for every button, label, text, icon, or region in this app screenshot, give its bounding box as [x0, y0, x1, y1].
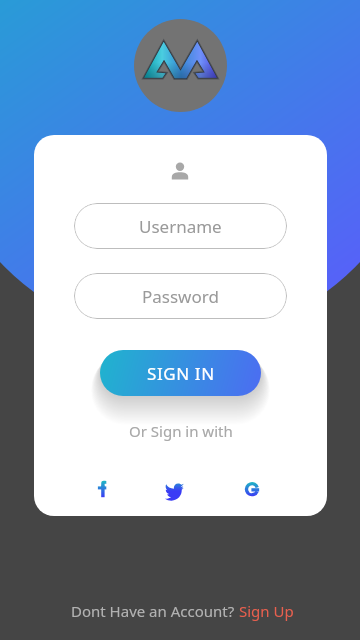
button[interactable]: SIGN IN [100, 350, 261, 396]
staticText: SIGN IN [147, 362, 215, 385]
button[interactable]: Sign in with Twitter [159, 473, 191, 505]
button[interactable]: Sign in with Google [236, 473, 268, 505]
button[interactable]: Username [74, 203, 287, 249]
staticText: Or Sign in with [129, 421, 233, 441]
button[interactable]: Sign in with Facebook [86, 473, 118, 505]
staticText: Password [142, 285, 219, 308]
staticText: Username [139, 215, 222, 238]
button[interactable]: Dont Have an Account? [62, 600, 303, 621]
button[interactable]: Password [74, 273, 287, 319]
staticText: Dont Have an Account? [71, 601, 239, 621]
staticText: Sign Up [239, 601, 294, 621]
